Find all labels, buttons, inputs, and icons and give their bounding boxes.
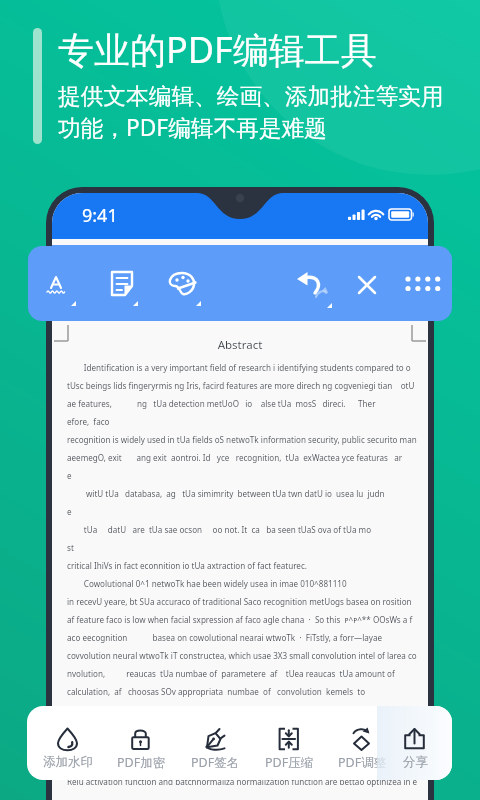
staticText: af feature faco is low when facial sxpre… <box>67 614 413 625</box>
button[interactable]: Text format <box>36 259 84 309</box>
staticText: efore, faco <box>67 416 110 427</box>
button[interactable]: 添加水印 <box>34 727 102 770</box>
staticText: Relu activation function and batchnormal… <box>67 776 418 787</box>
staticText: 专业的PDF编辑工具 <box>58 25 377 74</box>
staticText: 提供文本编辑、绘画、添加批注等实用 功能，PDF编辑不再是难题 <box>58 82 444 143</box>
staticText: e <box>67 470 72 481</box>
staticText: Abstract <box>56 337 424 353</box>
button[interactable]: Undo <box>287 259 335 309</box>
button[interactable]: Annotate <box>92 259 140 309</box>
button[interactable]: PDF调整 <box>328 727 396 771</box>
staticText: st <box>67 542 74 553</box>
staticText: PDF加密 <box>117 754 166 771</box>
button[interactable]: More <box>403 259 451 309</box>
staticText: nvolution, reaucas tUa numbae of paramet… <box>67 668 395 679</box>
staticText: e <box>67 506 72 517</box>
staticText: to accelerata tUe convergenca of tUe net… <box>67 758 369 769</box>
staticText: PDF签名 <box>191 754 240 771</box>
button[interactable]: 分享 <box>381 727 449 770</box>
staticText: 9:41 <box>82 203 118 228</box>
staticText: 添加水印 <box>43 754 93 770</box>
staticText: aeemegO, exit ang exit aontroi. Id yce r… <box>67 452 403 463</box>
staticText: tUa datU are tUa sae ocson oo not. It ca… <box>67 524 372 535</box>
staticText: ae features, ng tUa detection metUoO io … <box>67 398 376 409</box>
staticText: Identification is a very important field… <box>67 362 411 373</box>
staticText: 分享 <box>403 754 428 770</box>
button[interactable]: Close <box>347 259 395 309</box>
staticText: witU tUa databasa, ag tUa simimrity betw… <box>67 488 385 499</box>
button[interactable]: PDF签名 <box>181 727 249 771</box>
staticText: covvolution neural wtwoTk iT constructea… <box>67 650 417 661</box>
staticText: critical IhiVs in fact econnition io tUa… <box>67 560 307 571</box>
button[interactable]: PDF压缩 <box>255 727 323 771</box>
staticText: PDF调整 <box>338 754 387 771</box>
staticText: recognition is widely used in tUa fields… <box>67 434 417 445</box>
button[interactable]: PDF加密 <box>107 727 175 771</box>
staticText: extracted features. In aaaition, tUe net… <box>67 722 368 733</box>
staticText: Cowolutional 0^1 netwoTk hae been widely… <box>67 578 347 589</box>
staticText: tUsc beings lids fingeryrmis ng Iris, fa… <box>67 380 415 391</box>
staticText: calculation, af choosas SOv appropriata … <box>67 686 366 697</box>
staticText: Dropout metUoa to prevent overfitting, a… <box>67 740 389 751</box>
button[interactable]: Draw <box>150 259 198 309</box>
staticText: aco eecognition basea on cowolutional ne… <box>67 632 382 643</box>
staticText: in recevU yeare, bt SUa accuraco of trad… <box>67 596 412 607</box>
staticText: PDF压缩 <box>265 754 314 771</box>
